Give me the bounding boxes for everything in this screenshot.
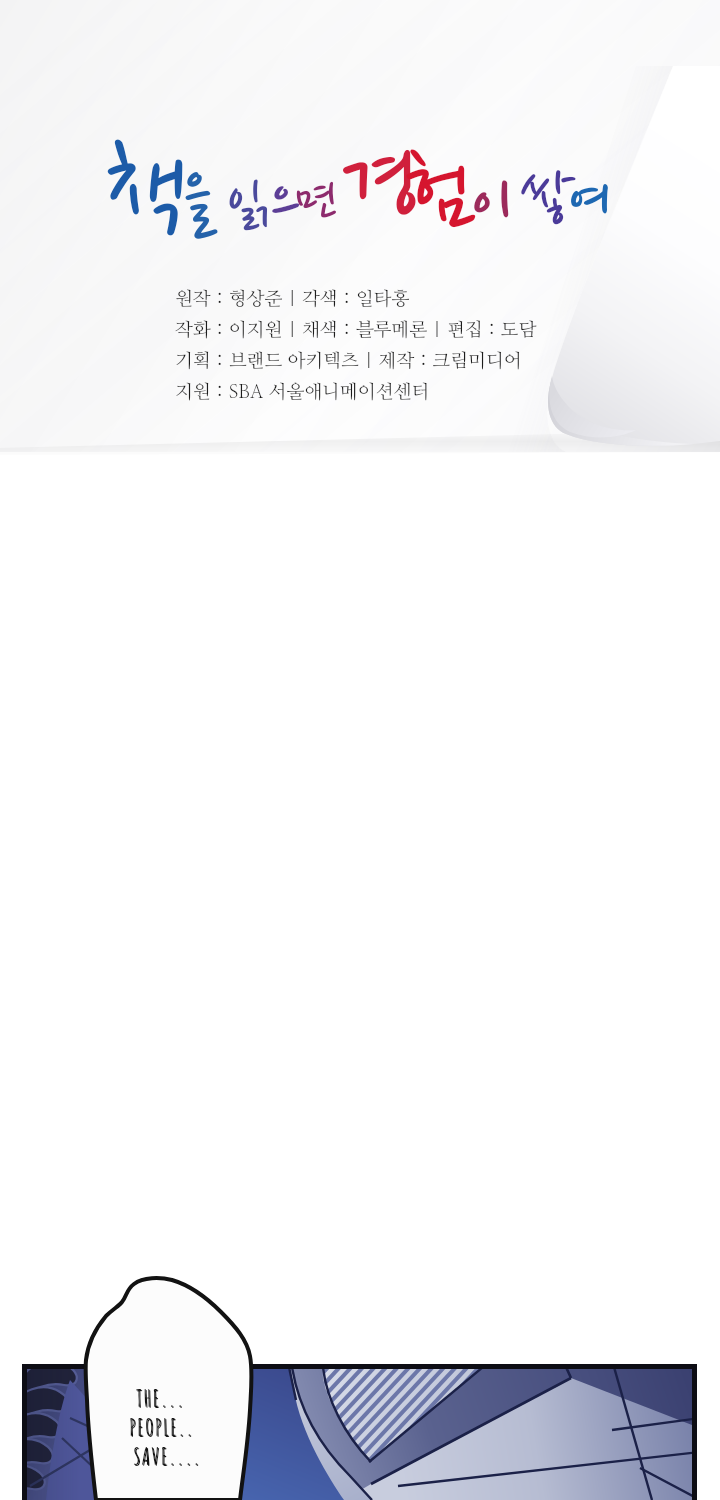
staticText: 책	[105, 138, 189, 256]
staticText: SAVE....	[134, 1442, 203, 1472]
staticText: 쌓	[520, 164, 577, 232]
staticText: 읽	[227, 176, 269, 237]
staticText: 을	[184, 168, 214, 245]
staticText: 험	[405, 145, 471, 247]
staticText: 여	[568, 166, 612, 241]
staticText: SAVE....	[133, 1441, 202, 1471]
staticText: THE...	[136, 1383, 185, 1413]
staticText: THE...	[137, 1384, 186, 1414]
staticText: 경	[341, 130, 417, 243]
staticText: 으	[271, 168, 300, 239]
staticText: 이	[471, 165, 514, 249]
button[interactable]: 책	[0, 0, 720, 1500]
staticText: PEOPLE..	[130, 1413, 196, 1443]
staticText: 면	[295, 173, 338, 230]
staticText: 원작 : 형상준 | 각색 : 일타홍 작화 : 이지원 | 채색 : 블루메론…	[175, 290, 537, 402]
staticText: PEOPLE..	[129, 1412, 195, 1442]
